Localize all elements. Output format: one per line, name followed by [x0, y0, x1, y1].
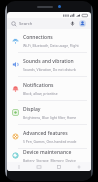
staticText: Notifications: [23, 82, 54, 89]
staticText: Battery, Storage, Memory, Device securit…: [23, 158, 87, 162]
button[interactable]: Device maintenance: [7, 149, 91, 162]
button[interactable]: Sounds and vibration: [7, 53, 91, 76]
button[interactable]: Display: [7, 101, 91, 124]
button[interactable]: Search: [7, 18, 91, 29]
button[interactable]: Advanced features: [7, 125, 91, 148]
staticText: Device maintenance: [23, 149, 72, 156]
staticText: Search: [19, 21, 68, 27]
staticText: Sounds, Vibration, Do not disturb: [23, 67, 76, 72]
button[interactable]: Connections: [7, 29, 91, 52]
staticText: Display: [23, 106, 41, 113]
staticText: S Pen, Games, One-handed mode: [23, 139, 77, 144]
button[interactable]: Recents: [11, 162, 27, 171]
staticText: Brightness, Blue light filter, Home scre…: [23, 115, 87, 120]
staticText: Advanced features: [23, 130, 68, 137]
button[interactable]: Back: [31, 162, 47, 171]
button[interactable]: Menu: [71, 162, 87, 171]
button[interactable]: Account: [78, 19, 87, 28]
staticText: Connections: [23, 34, 53, 41]
staticText: Block, allow, prioritise: [23, 91, 58, 96]
button[interactable]: Notifications: [7, 77, 91, 100]
staticText: Sounds and vibration: [23, 58, 74, 65]
button[interactable]: Voice search: [68, 19, 77, 28]
button[interactable]: Home: [51, 162, 67, 171]
staticText: Wi-Fi, Bluetooth, Data usage, Flight mod…: [23, 43, 87, 48]
